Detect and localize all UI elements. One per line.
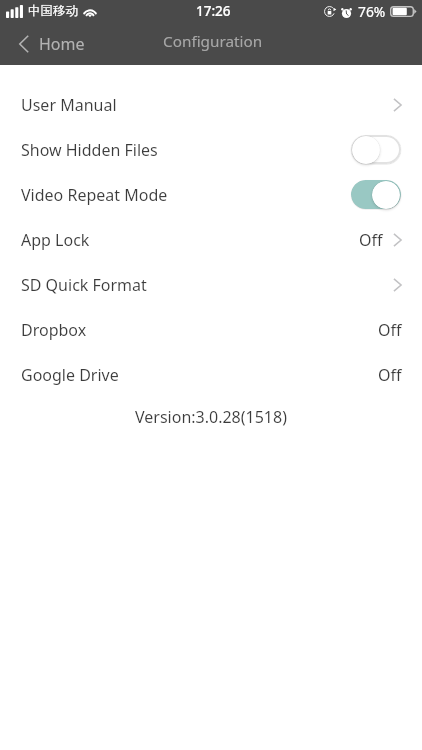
button[interactable]: Home <box>0 27 99 61</box>
staticText: Google Drive <box>21 364 119 386</box>
staticText: Video Repeat Mode <box>21 184 168 206</box>
button[interactable]: Dropbox <box>0 307 422 352</box>
staticText: 76% <box>358 2 386 21</box>
button[interactable]: Switch, on <box>351 180 401 209</box>
staticText: 中国移动 <box>28 3 78 19</box>
staticText: Configuration <box>163 31 263 52</box>
staticText: Off <box>378 319 402 341</box>
staticText: Home <box>39 33 85 55</box>
staticText: SD Quick Format <box>21 274 147 296</box>
staticText: Off <box>359 229 383 251</box>
staticText: 17:26 <box>196 2 231 20</box>
staticText: Off <box>378 364 402 386</box>
button[interactable]: App Lock <box>0 217 422 262</box>
button[interactable]: Video Repeat Mode <box>0 172 422 217</box>
button[interactable]: Show Hidden Files <box>0 127 422 172</box>
staticText: Version:3.0.28(1518) <box>0 406 422 428</box>
staticText: User Manual <box>21 94 117 116</box>
staticText: Dropbox <box>21 319 87 341</box>
button[interactable]: User Manual <box>0 82 422 127</box>
button[interactable]: SD Quick Format <box>0 262 422 307</box>
staticText: App Lock <box>21 229 90 251</box>
button[interactable]: Switch, off <box>351 135 401 164</box>
button[interactable]: Google Drive <box>0 352 422 397</box>
staticText: Show Hidden Files <box>21 139 158 161</box>
